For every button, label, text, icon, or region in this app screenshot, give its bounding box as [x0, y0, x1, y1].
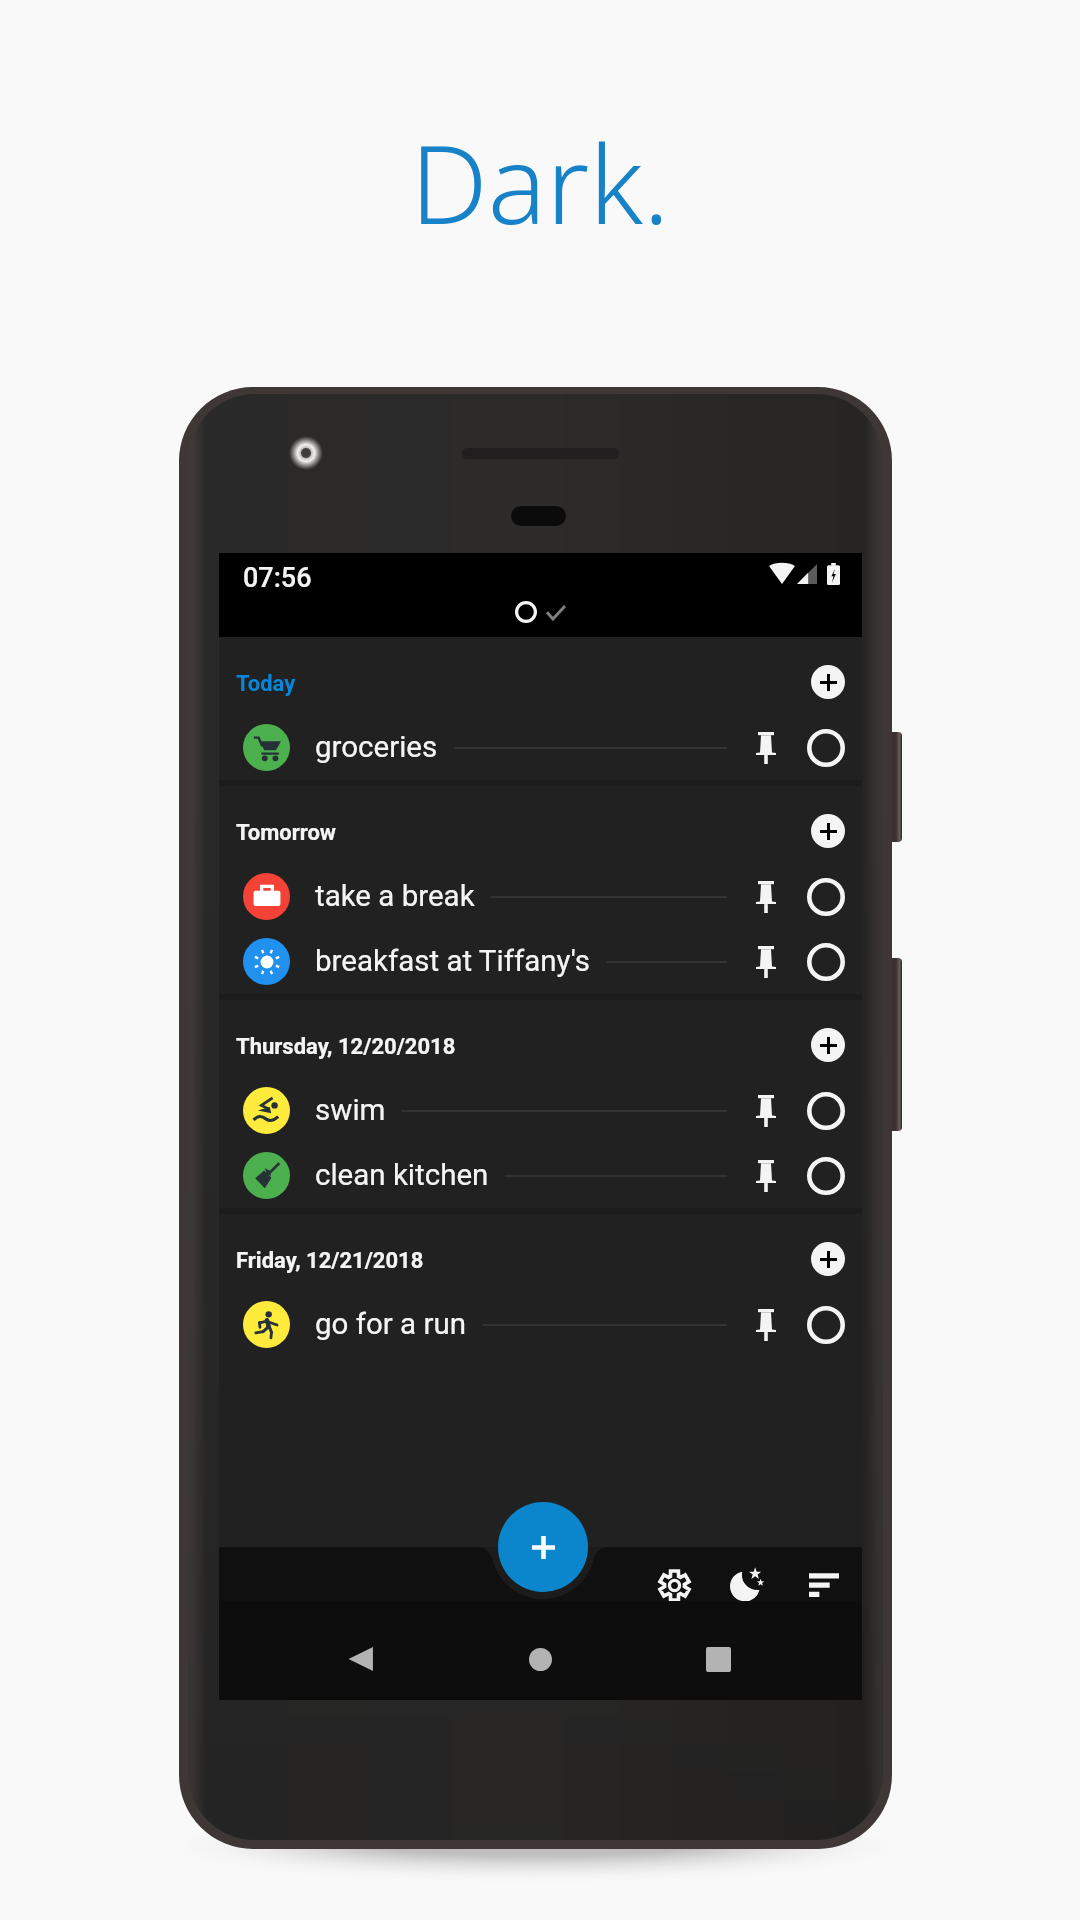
button[interactable]: Back [335, 1633, 387, 1685]
button[interactable]: groceries [219, 715, 862, 780]
staticText: clean kitchen [315, 1158, 489, 1193]
staticText: Dark. [410, 107, 670, 247]
button[interactable]: Night mode [721, 1559, 773, 1611]
staticText: Friday, 12/21/2018 [236, 1248, 424, 1274]
button[interactable]: go for a run [219, 1292, 862, 1357]
button[interactable]: Recents [692, 1633, 744, 1685]
button[interactable]: Today [219, 637, 862, 715]
button[interactable]: Add task [811, 1242, 845, 1276]
button[interactable]: swim [219, 1078, 862, 1143]
button[interactable]: Complete [807, 943, 845, 981]
button[interactable]: Add [498, 1502, 588, 1592]
button[interactable]: Pin [749, 880, 783, 914]
button[interactable]: Complete [807, 729, 845, 767]
button[interactable]: Complete [807, 1306, 845, 1344]
button[interactable]: take a break [219, 864, 862, 929]
button[interactable]: Friday, 12/21/2018 [219, 1214, 862, 1292]
staticText: swim [315, 1093, 386, 1128]
staticText: take a break [315, 879, 475, 914]
button[interactable]: Pin [749, 945, 783, 979]
button[interactable]: Tomorrow [219, 786, 862, 864]
button[interactable]: Home [514, 1633, 566, 1685]
button[interactable]: Add task [811, 1028, 845, 1062]
button[interactable]: Complete [807, 1092, 845, 1130]
staticText: 07:56 [243, 562, 312, 594]
staticText: groceries [315, 730, 438, 765]
button[interactable]: Pin [749, 731, 783, 765]
button[interactable]: Sort [798, 1559, 850, 1611]
button[interactable]: Complete [807, 1157, 845, 1195]
staticText: Thursday, 12/20/2018 [236, 1034, 456, 1060]
button[interactable]: clean kitchen [219, 1143, 862, 1208]
button[interactable]: Settings [648, 1559, 700, 1611]
button[interactable]: Thursday, 12/20/2018 [219, 1000, 862, 1078]
staticText: Tomorrow [236, 820, 337, 846]
button[interactable]: breakfast at Tiffany's [219, 929, 862, 994]
button[interactable]: Pin [749, 1308, 783, 1342]
staticText: Today [236, 671, 296, 697]
button[interactable]: Add task [811, 814, 845, 848]
staticText: breakfast at Tiffany's [315, 944, 590, 979]
button[interactable]: Pin [749, 1094, 783, 1128]
button[interactable]: Complete [807, 878, 845, 916]
button[interactable]: Pin [749, 1159, 783, 1193]
staticText: go for a run [315, 1307, 467, 1342]
button[interactable]: Add task [811, 665, 845, 699]
